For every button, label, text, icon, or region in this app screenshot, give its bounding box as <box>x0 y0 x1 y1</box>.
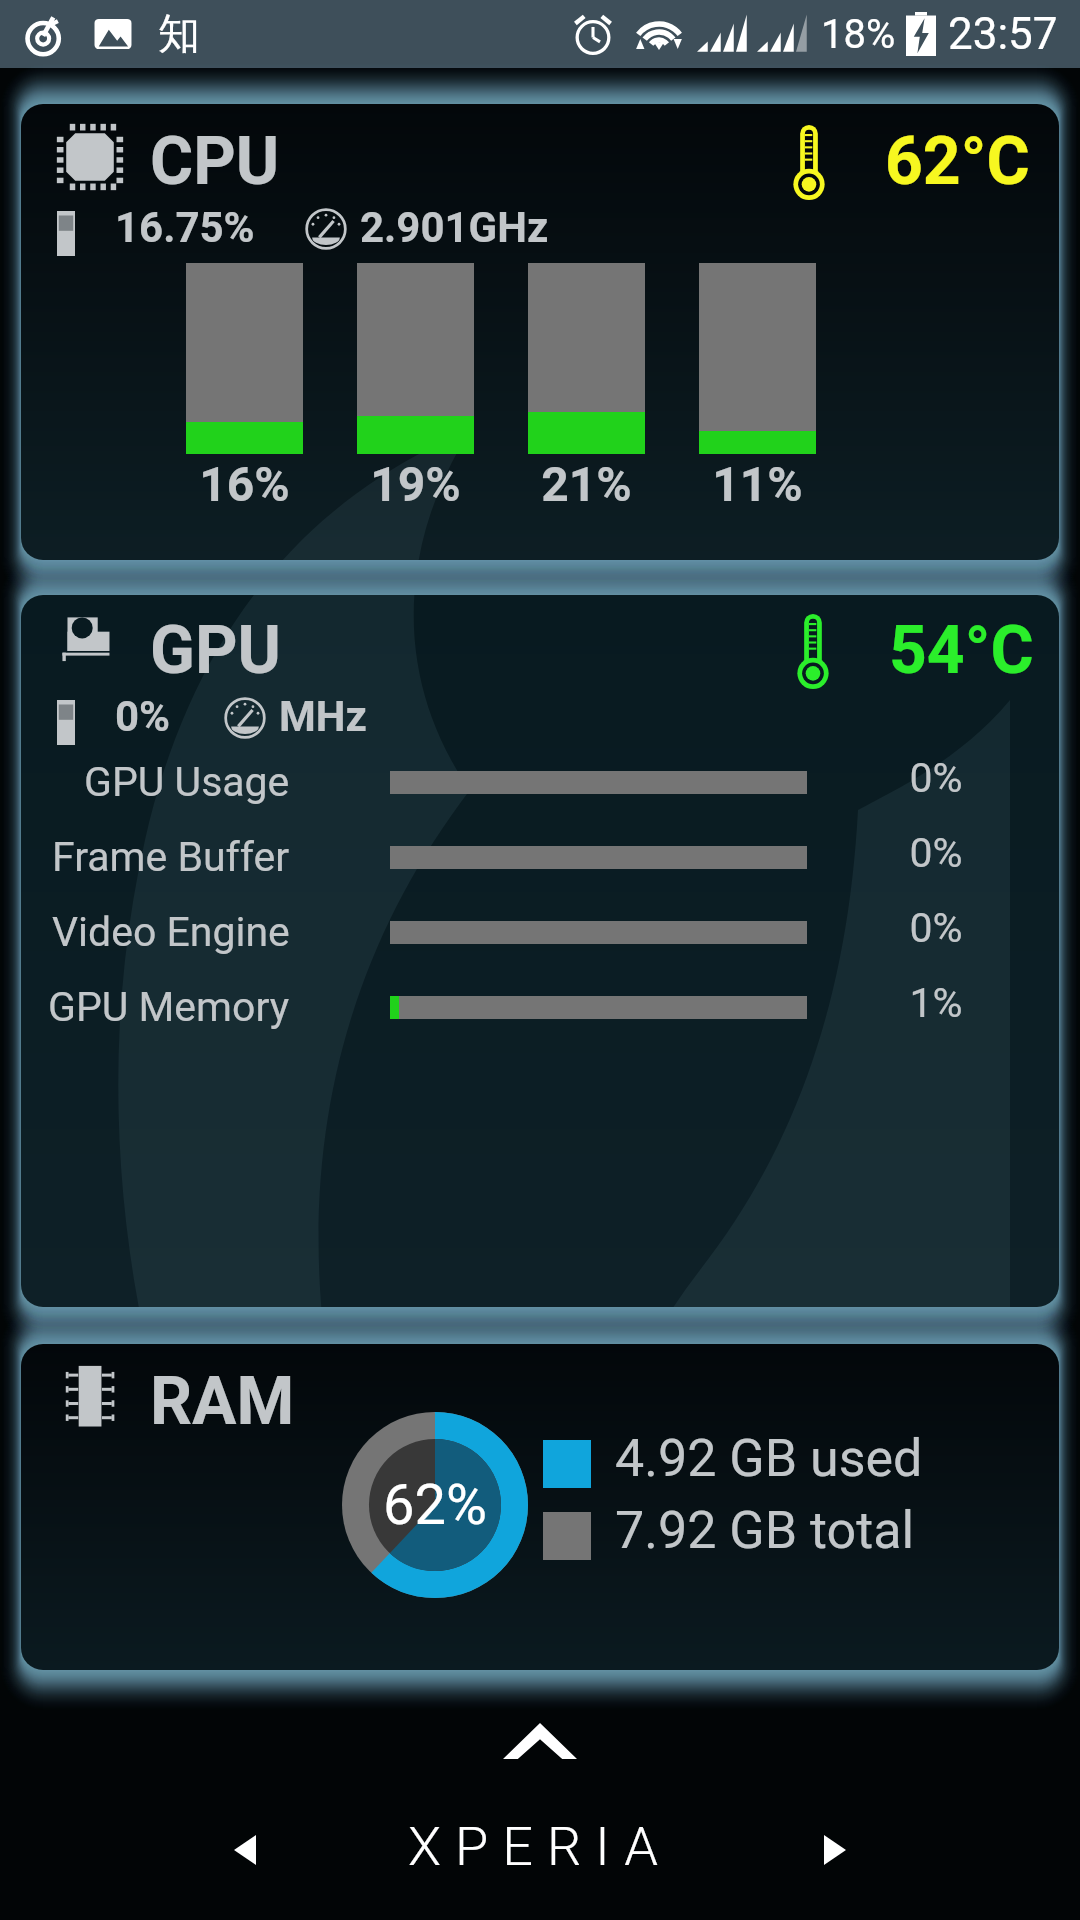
staticText: 16.75% <box>115 203 255 252</box>
staticText: 7.92 GB total <box>615 1500 915 1561</box>
staticText: 16% <box>186 456 303 512</box>
staticText: 0% <box>115 692 171 741</box>
staticText: Frame Buffer <box>52 833 290 881</box>
staticText: GPU Memory <box>48 983 290 1031</box>
staticText: 0% <box>881 829 991 877</box>
staticText: GPU Usage <box>84 758 290 806</box>
button[interactable]: CPU <box>21 104 1059 560</box>
button[interactable]: GPU <box>21 595 1059 1307</box>
staticText: 21% <box>528 456 645 512</box>
staticText: 18% <box>821 11 896 58</box>
staticText: RAM <box>150 1363 295 1440</box>
button[interactable]: Forward <box>795 1810 875 1890</box>
button[interactable]: Back <box>205 1810 285 1890</box>
staticText: 知 <box>158 8 200 61</box>
staticText: 0% <box>881 904 991 952</box>
staticText: CPU <box>150 123 280 200</box>
button[interactable]: RAM <box>21 1344 1059 1670</box>
staticText: MHz <box>279 692 367 741</box>
staticText: 4.92 GB used <box>615 1428 923 1489</box>
staticText: 23:57 <box>948 8 1058 60</box>
staticText: 2.901GHz <box>360 203 549 252</box>
staticText: GPU <box>150 612 282 689</box>
button[interactable]: Expand <box>480 1700 600 1780</box>
staticText: XPERIA <box>0 1815 1080 1878</box>
staticText: 11% <box>699 456 816 512</box>
staticText: 0% <box>881 754 991 802</box>
staticText: 54°C <box>889 612 1034 689</box>
staticText: 19% <box>357 456 474 512</box>
staticText: 1% <box>881 979 991 1027</box>
staticText: 62% <box>383 1472 487 1538</box>
staticText: 62°C <box>885 123 1030 200</box>
staticText: Video Engine <box>52 908 290 956</box>
